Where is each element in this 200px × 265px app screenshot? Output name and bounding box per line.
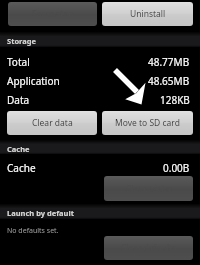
staticText: Uninstall bbox=[130, 8, 166, 20]
staticText: Total bbox=[7, 55, 30, 69]
button[interactable]: Clear data bbox=[7, 111, 97, 135]
staticText: Data bbox=[7, 93, 30, 107]
button[interactable] bbox=[0, 140, 200, 154]
button[interactable]: Move to SD card bbox=[102, 111, 193, 135]
button[interactable]: Force stop bbox=[8, 2, 97, 26]
button[interactable]: Clear cache bbox=[104, 176, 193, 201]
staticText: Move to SD card bbox=[115, 117, 180, 129]
button[interactable] bbox=[0, 204, 200, 219]
staticText: 128KB bbox=[160, 93, 190, 107]
staticText: Clear data bbox=[32, 117, 73, 129]
staticText: 48.65MB bbox=[148, 74, 190, 88]
staticText: Cache bbox=[7, 144, 30, 154]
staticText: 0.00B bbox=[163, 161, 190, 175]
button[interactable]: Uninstall bbox=[102, 2, 193, 26]
staticText: Storage bbox=[7, 36, 36, 46]
staticText: No defaults set. bbox=[7, 226, 59, 236]
button[interactable]: Clear defaults bbox=[104, 236, 193, 260]
staticText: 48.77MB bbox=[148, 55, 190, 69]
staticText: Application bbox=[7, 74, 60, 88]
staticText: Cache bbox=[7, 161, 36, 175]
staticText: Launch by default bbox=[7, 208, 74, 218]
button[interactable] bbox=[0, 32, 200, 47]
